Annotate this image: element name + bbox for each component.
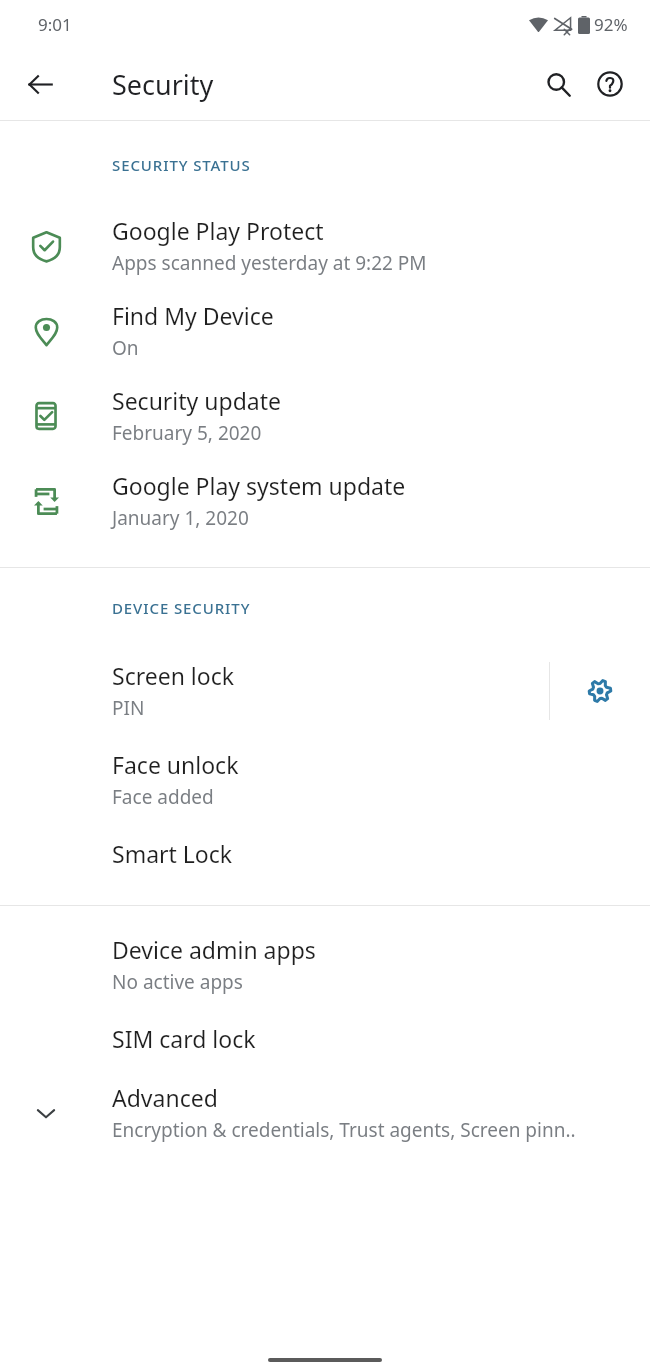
- button[interactable]: Back: [16, 60, 64, 108]
- staticText: January 1, 2020: [112, 505, 249, 531]
- staticText: Apps scanned yesterday at 9:22 PM: [112, 250, 427, 276]
- staticText: Encryption & credentials, Trust agents, …: [112, 1117, 576, 1143]
- button[interactable]: Security update: [0, 373, 650, 458]
- staticText: 9:01: [38, 13, 72, 36]
- staticText: Face unlock: [112, 749, 239, 780]
- button[interactable]: Google Play system update: [0, 458, 650, 543]
- button[interactable]: Help: [584, 58, 636, 110]
- button[interactable]: Screen lock settings: [550, 653, 650, 729]
- staticText: SECURITY STATUS: [112, 155, 251, 175]
- button[interactable]: Face unlock: [0, 735, 650, 824]
- staticText: No active apps: [112, 969, 243, 995]
- button[interactable]: Google Play Protect: [0, 203, 650, 288]
- staticText: February 5, 2020: [112, 420, 262, 446]
- staticText: Device admin apps: [112, 934, 316, 965]
- button[interactable]: Find My Device: [0, 288, 650, 373]
- staticText: Face added: [112, 784, 214, 810]
- staticText: Smart Lock: [112, 838, 233, 869]
- staticText: Security update: [112, 385, 281, 416]
- button[interactable]: Device admin apps: [0, 920, 650, 1009]
- staticText: Google Play Protect: [112, 215, 324, 246]
- staticText: PIN: [112, 695, 145, 721]
- staticText: DEVICE SECURITY: [112, 598, 251, 618]
- staticText: Google Play system update: [112, 470, 406, 501]
- staticText: Security: [112, 66, 214, 103]
- button[interactable]: SIM card lock: [0, 1009, 650, 1068]
- staticText: On: [112, 335, 139, 361]
- staticText: SIM card lock: [112, 1023, 256, 1054]
- staticText: Find My Device: [112, 300, 274, 331]
- button[interactable]: Screen lock: [0, 646, 549, 735]
- staticText: Advanced: [112, 1082, 218, 1113]
- button[interactable]: Smart Lock: [0, 824, 650, 883]
- staticText: 92%: [594, 13, 628, 36]
- button[interactable]: Search: [532, 58, 584, 110]
- staticText: Screen lock: [112, 660, 235, 691]
- button[interactable]: Advanced: [0, 1068, 650, 1157]
